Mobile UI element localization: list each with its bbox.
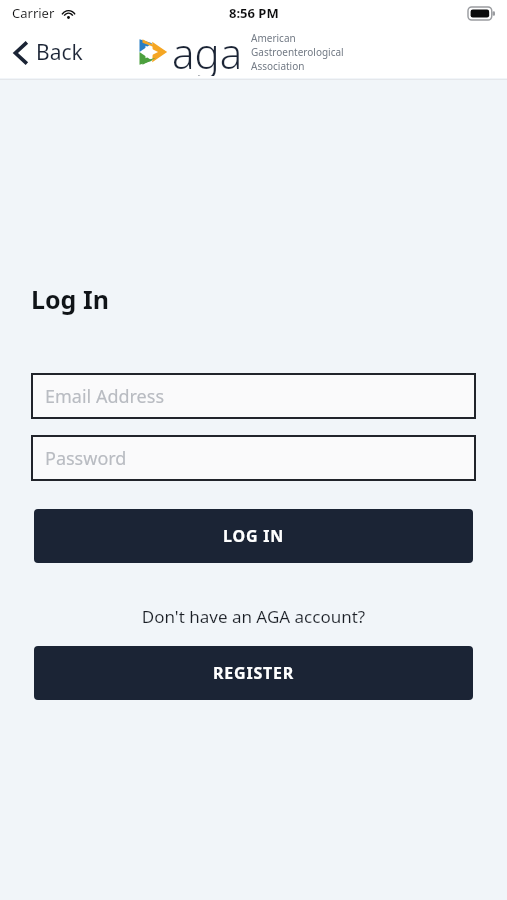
staticText: 8:56 PM: [229, 4, 279, 22]
staticText: Association: [251, 59, 305, 73]
staticText: American: [251, 31, 296, 45]
staticText: Don't have an AGA account?: [0, 605, 507, 628]
staticText: Log In: [31, 282, 109, 316]
button[interactable]: REGISTER: [34, 646, 473, 700]
staticText: Email Address: [45, 384, 165, 409]
staticText: Carrier: [12, 4, 55, 22]
staticText: LOG IN: [223, 525, 285, 547]
button[interactable]: Password: [31, 435, 476, 481]
button[interactable]: Email Address: [31, 373, 476, 419]
staticText: Back: [36, 38, 83, 67]
staticText: aga: [172, 24, 243, 76]
button[interactable]: LOG IN: [34, 509, 473, 563]
staticText: Password: [45, 446, 127, 471]
staticText: REGISTER: [213, 662, 295, 684]
button[interactable]: Back: [8, 32, 89, 73]
staticText: Gastroenterological: [251, 45, 344, 59]
